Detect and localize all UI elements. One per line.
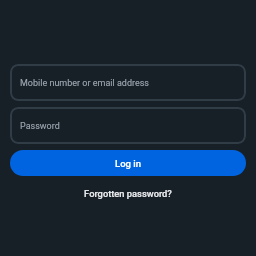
button[interactable]: Log in <box>10 150 246 176</box>
button[interactable]: Password <box>10 107 246 144</box>
button[interactable]: Forgotten password? <box>78 186 178 201</box>
staticText: Log in <box>115 158 142 169</box>
staticText: Password <box>20 121 60 132</box>
staticText: Mobile number or email address <box>20 78 150 89</box>
button[interactable]: Mobile number or email address <box>10 64 246 101</box>
